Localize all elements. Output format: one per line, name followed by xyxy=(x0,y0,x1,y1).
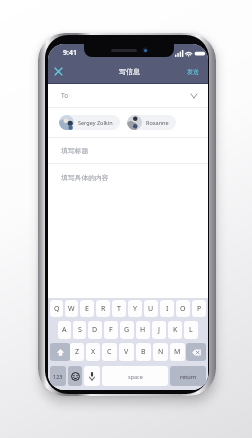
staticText: 写信息 xyxy=(119,67,140,76)
button[interactable]: H xyxy=(136,321,150,339)
button[interactable]: W xyxy=(65,300,78,317)
button[interactable]: N xyxy=(153,343,168,361)
staticText: G xyxy=(124,325,130,335)
button[interactable]: Y xyxy=(128,300,142,317)
button[interactable]: K xyxy=(168,321,182,339)
button[interactable]: B xyxy=(136,343,151,361)
button[interactable]: P xyxy=(192,300,206,317)
staticText: T xyxy=(117,304,121,314)
staticText: F xyxy=(109,325,113,335)
staticText: 填写具体的内容 xyxy=(61,173,109,182)
button[interactable]: Voice input xyxy=(84,366,100,386)
button[interactable]: 123 xyxy=(50,366,66,386)
button[interactable]: A xyxy=(58,321,71,339)
staticText: A xyxy=(62,325,67,335)
staticText: S xyxy=(78,325,82,335)
button[interactable]: R xyxy=(96,300,110,317)
button[interactable]: U xyxy=(144,300,158,317)
staticText: X xyxy=(91,347,96,357)
button[interactable]: J xyxy=(152,321,166,339)
staticText: Y xyxy=(133,304,137,314)
button[interactable]: return xyxy=(170,366,206,386)
staticText: R xyxy=(101,304,106,314)
button[interactable]: Roxanne xyxy=(127,115,176,130)
staticText: J xyxy=(158,325,160,335)
button[interactable]: 填写具体的内容 xyxy=(48,164,208,298)
button[interactable]: Z xyxy=(70,343,84,361)
button[interactable]: To xyxy=(48,84,208,107)
staticText: Roxanne xyxy=(146,119,169,126)
button[interactable]: Sergey Zolkin xyxy=(59,115,120,130)
button[interactable]: X xyxy=(86,343,100,361)
staticText: B xyxy=(141,347,146,357)
button[interactable]: C xyxy=(102,343,117,361)
staticText: M xyxy=(174,347,181,357)
button[interactable]: space xyxy=(102,366,168,386)
button[interactable]: Shift xyxy=(50,343,70,361)
button[interactable]: Emoji xyxy=(68,366,82,386)
button[interactable]: E xyxy=(80,300,94,317)
button[interactable]: G xyxy=(120,321,134,339)
button[interactable]: Close xyxy=(48,61,69,82)
button[interactable]: O xyxy=(176,300,190,317)
staticText: P xyxy=(197,304,202,314)
button[interactable]: I xyxy=(160,300,174,317)
staticText: 发送 xyxy=(187,68,199,76)
button[interactable]: 发送 xyxy=(178,63,208,81)
staticText: E xyxy=(85,304,89,314)
button[interactable]: F xyxy=(104,321,118,339)
button[interactable]: M xyxy=(170,343,185,361)
staticText: N xyxy=(158,347,164,357)
staticText: 填写标题 xyxy=(61,146,89,155)
button[interactable]: S xyxy=(73,321,86,339)
staticText: Sergey Zolkin xyxy=(78,119,113,126)
button[interactable]: 填写标题 xyxy=(48,138,208,163)
button[interactable]: T xyxy=(112,300,126,317)
staticText: 9:41 xyxy=(63,48,77,58)
staticText: space xyxy=(128,373,143,380)
staticText: H xyxy=(140,325,146,335)
staticText: D xyxy=(92,325,98,335)
staticText: Z xyxy=(75,347,80,357)
staticText: O xyxy=(180,304,186,314)
button[interactable]: L xyxy=(184,321,198,339)
button[interactable]: V xyxy=(119,343,134,361)
button[interactable]: Q xyxy=(50,300,63,317)
button[interactable]: Backspace xyxy=(186,343,206,361)
staticText: V xyxy=(124,347,129,357)
staticText: 123 xyxy=(53,373,63,380)
button[interactable]: D xyxy=(88,321,102,339)
staticText: I xyxy=(166,304,169,314)
staticText: W xyxy=(68,304,75,314)
staticText: C xyxy=(107,347,112,357)
staticText: To xyxy=(61,91,69,100)
staticText: return xyxy=(180,373,197,380)
staticText: K xyxy=(173,325,178,335)
staticText: L xyxy=(189,325,193,335)
staticText: U xyxy=(148,304,154,314)
staticText: Q xyxy=(54,304,60,314)
